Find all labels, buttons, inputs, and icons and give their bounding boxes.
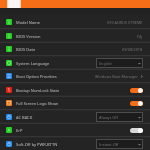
button[interactable]: BIOS Date bbox=[0, 42, 150, 56]
staticText: Always Off bbox=[99, 115, 118, 120]
staticText: Bootup NumLock State bbox=[16, 88, 60, 93]
staticText: AC BACK bbox=[16, 115, 33, 120]
staticText: Soft-Off by PWR-BTTN bbox=[16, 142, 58, 147]
staticText: Windows Boot Manager bbox=[95, 74, 138, 79]
staticText: X99 AORUS XTREME bbox=[107, 20, 143, 25]
staticText: BIOS Date bbox=[16, 47, 36, 52]
button[interactable]: Tab bbox=[7, 0, 21, 8]
button[interactable]: Boot Option Priorities bbox=[0, 69, 150, 83]
staticText: Model Name bbox=[16, 20, 41, 25]
button[interactable]: AC BACK bbox=[0, 110, 150, 124]
staticText: BIOS Version bbox=[16, 34, 41, 39]
button[interactable]: System Language bbox=[0, 56, 150, 70]
button[interactable]: Full Screen Logo Show bbox=[0, 96, 150, 110]
button[interactable]: BIOS Version bbox=[0, 29, 150, 43]
staticText: F4j bbox=[137, 34, 143, 39]
button[interactable]: Enabled bbox=[130, 88, 143, 93]
button[interactable]: Enabled bbox=[130, 101, 143, 106]
staticText: ErP bbox=[16, 128, 23, 133]
button[interactable]: ErP bbox=[0, 123, 150, 137]
button[interactable]: Disabled bbox=[130, 128, 143, 133]
button[interactable]: Soft-Off by PWR-BTTN bbox=[0, 137, 150, 150]
button[interactable]: Model Name bbox=[0, 15, 150, 29]
button[interactable]: Always Off bbox=[96, 112, 143, 122]
staticText: System Language bbox=[16, 61, 50, 66]
staticText: Boot Option Priorities bbox=[16, 74, 57, 79]
staticText: 09/08/2018 bbox=[122, 47, 143, 52]
button[interactable]: English bbox=[96, 58, 143, 68]
button[interactable]: Bootup NumLock State bbox=[0, 83, 150, 97]
staticText: English bbox=[99, 61, 112, 66]
staticText: Instant-Off bbox=[99, 142, 119, 147]
button[interactable]: Instant-Off bbox=[96, 139, 143, 149]
staticText: Full Screen Logo Show bbox=[16, 101, 58, 106]
